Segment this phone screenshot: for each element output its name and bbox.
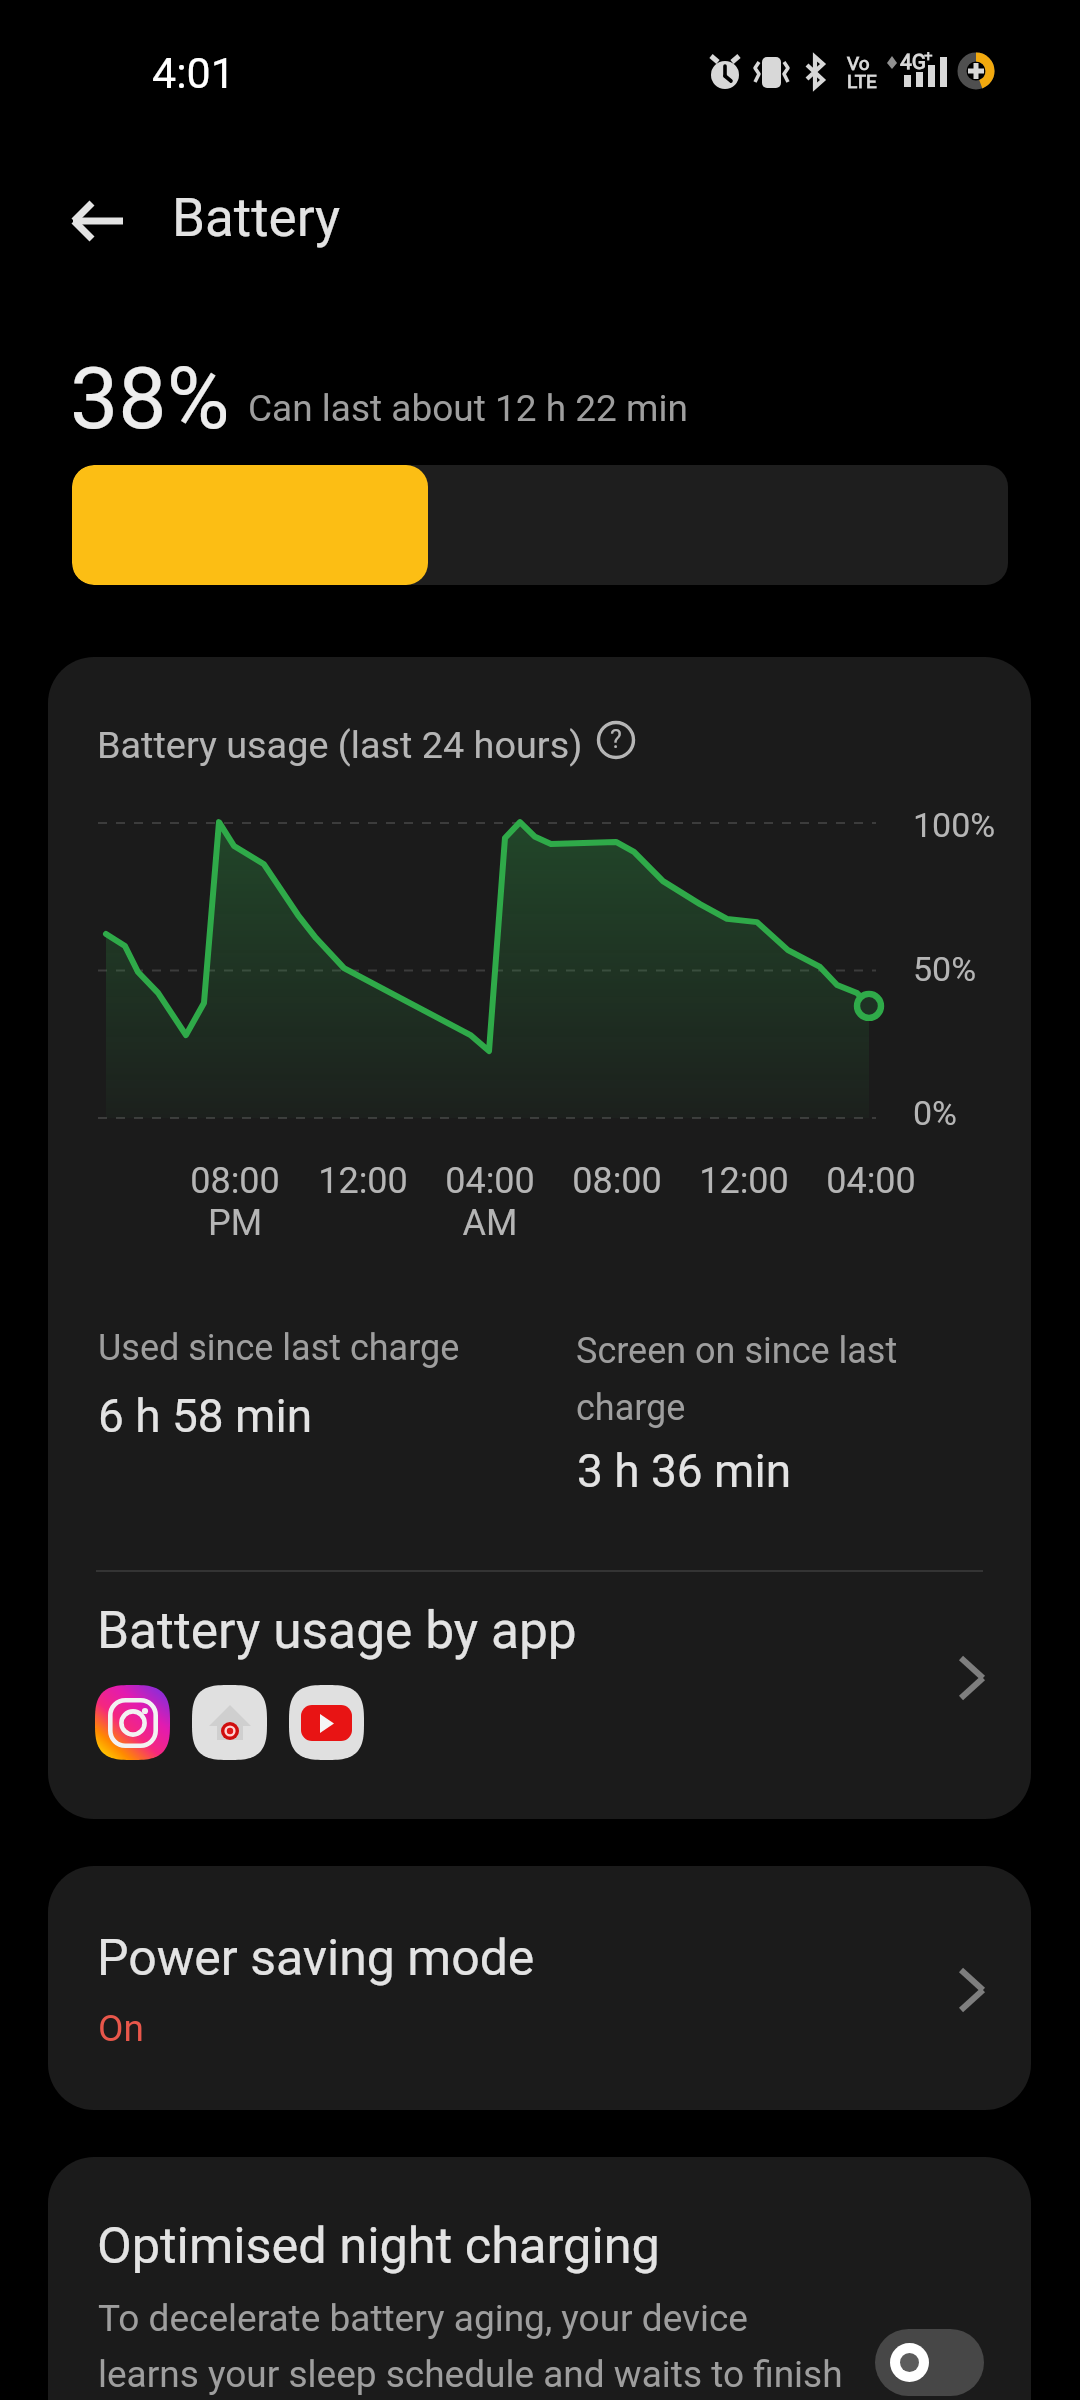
staticText: Used since last charge: [98, 1327, 460, 1369]
staticText: Screen on since last charge: [576, 1330, 898, 1429]
button[interactable]: Optimised night charging: [48, 2157, 1031, 2400]
staticText: On: [98, 2007, 144, 2050]
staticText: 38%: [70, 348, 230, 449]
staticText: Battery usage by app: [97, 1600, 577, 1660]
staticText: LTE: [847, 70, 877, 92]
button[interactable]: Back: [48, 170, 144, 266]
staticText: To decelerate battery aging, your device…: [98, 2297, 843, 2396]
staticText: ?: [610, 725, 622, 754]
staticText: AM: [410, 1202, 570, 1244]
staticText: 50%: [913, 949, 977, 989]
button[interactable]: Optimised night charging toggle: [875, 2329, 984, 2396]
staticText: 08:00: [155, 1160, 315, 1202]
staticText: 4:01: [152, 48, 235, 98]
staticText: PM: [155, 1202, 315, 1244]
staticText: 3 h 36 min: [577, 1444, 792, 1498]
button[interactable]: Help: [594, 718, 638, 762]
staticText: 12:00: [664, 1160, 824, 1202]
button[interactable]: Battery usage by app: [48, 1570, 1031, 1819]
staticText: Power saving mode: [97, 1929, 535, 1988]
staticText: 04:00: [410, 1160, 570, 1202]
staticText: Can last about 12 h 22 min: [248, 387, 688, 430]
staticText: Optimised night charging: [97, 2216, 660, 2275]
staticText: Battery usage (last 24 hours): [97, 723, 583, 767]
staticText: 100%: [913, 805, 996, 845]
button[interactable]: Power saving mode: [48, 1866, 1031, 2110]
staticText: 08:00: [537, 1160, 697, 1202]
staticText: +: [924, 47, 933, 65]
staticText: 0%: [913, 1093, 958, 1133]
staticText: Battery: [172, 187, 341, 249]
staticText: 4G: [900, 50, 927, 75]
staticText: 6 h 58 min: [98, 1389, 313, 1443]
staticText: 04:00: [791, 1160, 951, 1202]
staticText: 12:00: [283, 1160, 443, 1202]
staticText: Vo: [847, 52, 870, 74]
